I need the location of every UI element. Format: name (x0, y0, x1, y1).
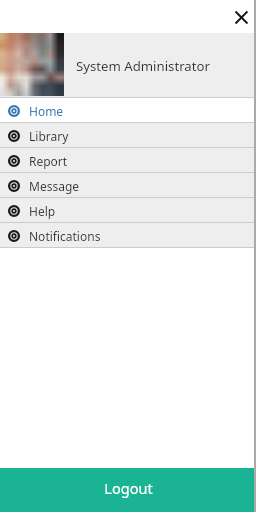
button[interactable]: Home (0, 98, 256, 123)
staticText: Library (29, 128, 69, 144)
button[interactable]: Logout (0, 468, 256, 512)
button[interactable]: Message (0, 173, 256, 198)
button[interactable]: Close (230, 6, 253, 29)
button[interactable]: Library (0, 123, 256, 148)
staticText: Report (29, 153, 68, 169)
staticText: Message (29, 178, 80, 194)
staticText: Help (29, 203, 56, 219)
button[interactable]: Notifications (0, 223, 256, 248)
button[interactable]: Report (0, 148, 256, 173)
staticText: System Administrator (76, 57, 210, 75)
staticText: Notifications (29, 228, 101, 244)
staticText: Logout (104, 478, 153, 498)
button[interactable]: Help (0, 198, 256, 223)
staticText: Home (29, 103, 64, 119)
